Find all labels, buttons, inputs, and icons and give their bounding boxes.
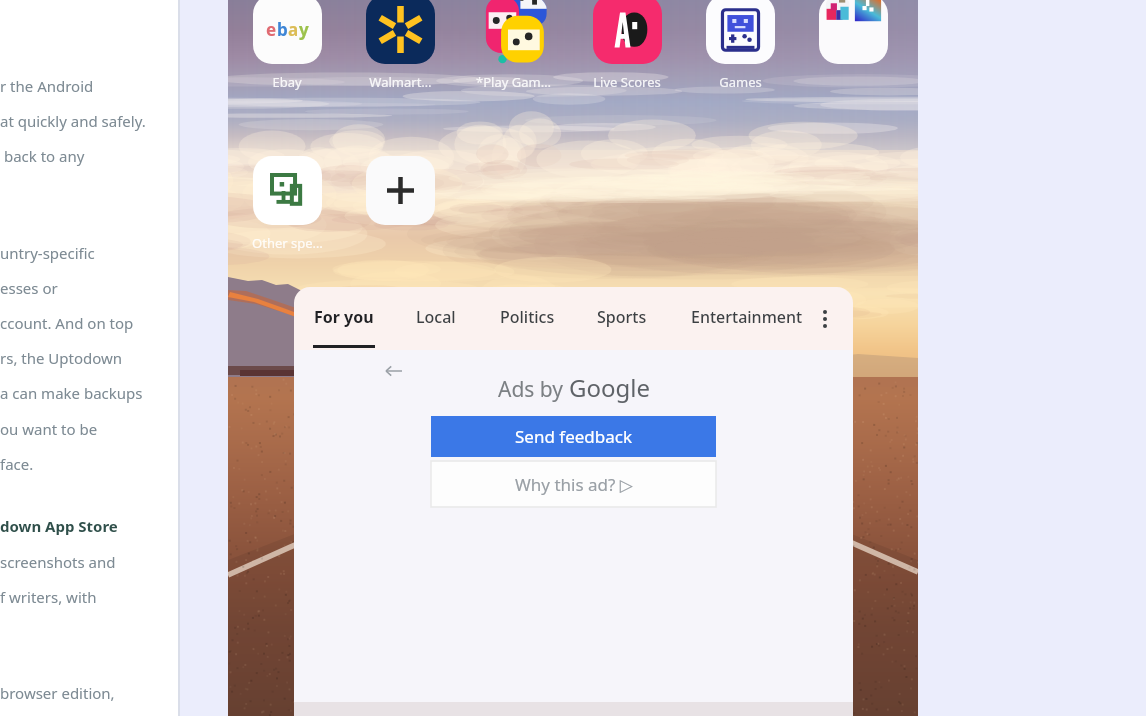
staticText: Live Scores [593, 73, 661, 91]
staticText: Walmart… [369, 73, 432, 91]
staticText: *Play Gam… [476, 73, 551, 91]
button[interactable]: Games [695, 0, 785, 91]
staticText: Sports [597, 306, 647, 328]
staticText: y [299, 18, 309, 41]
button[interactable]: *Play Gam… [468, 0, 558, 91]
staticText: a can make backups [0, 383, 143, 403]
staticText: Why this ad? ▷ [515, 473, 633, 496]
staticText: Send feedback [515, 425, 633, 448]
staticText: face. [0, 454, 34, 474]
button[interactable]: Local [413, 287, 458, 350]
staticText: esses or [0, 278, 58, 298]
staticText: r the Android [0, 76, 94, 96]
button[interactable]: App [355, 156, 445, 225]
staticText: screenshots and [0, 552, 116, 572]
staticText: ou want to be [0, 419, 98, 439]
button[interactable]: App [808, 0, 898, 64]
staticText: Ebay [272, 73, 302, 91]
button[interactable]: More options [809, 303, 841, 335]
staticText: Other spe… [252, 234, 323, 252]
button[interactable]: Send feedback [431, 416, 716, 457]
button[interactable]: Back [384, 362, 402, 380]
staticText: untry-specific [0, 243, 95, 263]
staticText: e [266, 18, 277, 41]
staticText: rs, the Uptodown [0, 348, 123, 368]
button[interactable]: Other spe… [242, 156, 332, 252]
button[interactable]: Entertainment [687, 287, 807, 350]
button[interactable]: e [242, 0, 332, 91]
button[interactable]: Politics [498, 287, 556, 350]
button[interactable]: Why this ad? ▷ [431, 461, 716, 507]
staticText: f writers, with [0, 587, 97, 607]
staticText: Google [569, 371, 650, 404]
button[interactable]: Walmart… [355, 0, 445, 91]
staticText: Games [719, 73, 762, 91]
button[interactable]: Live Scores [582, 0, 672, 91]
staticText: Entertainment [691, 306, 803, 328]
staticText: down App Store [0, 516, 118, 536]
staticText: ccount. And on top [0, 313, 134, 333]
staticText: b [277, 18, 288, 41]
staticText: Politics [500, 306, 555, 328]
staticText: Local [416, 306, 456, 328]
staticText: at quickly and safely. [0, 111, 146, 131]
staticText: a [288, 18, 299, 41]
staticText: Ads by [498, 375, 569, 404]
staticText: browser edition, [0, 683, 115, 703]
button[interactable]: Sports [594, 287, 649, 350]
staticText: back to any [0, 146, 85, 166]
button[interactable]: For you [313, 287, 375, 350]
staticText: For you [314, 306, 374, 328]
